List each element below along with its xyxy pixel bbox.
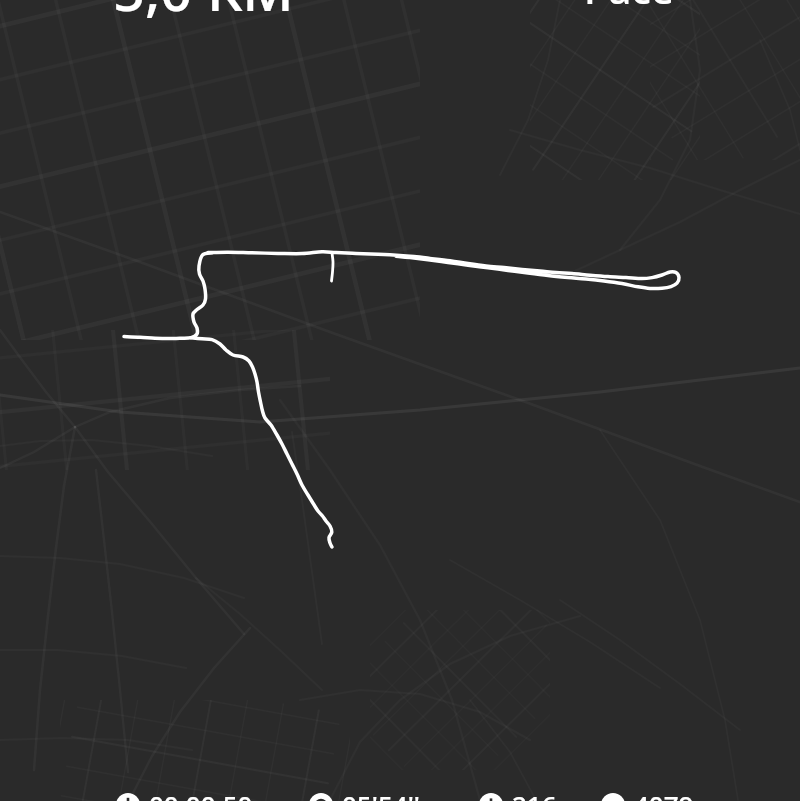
button[interactable]: Calories (479, 787, 557, 801)
other: Duration (116, 793, 140, 801)
other: Average pace (309, 793, 333, 801)
button[interactable]: Average pace (309, 787, 420, 801)
staticText: Pace (584, 0, 674, 15)
staticText: 05'54'' (342, 787, 420, 801)
staticText: 4079 (634, 787, 694, 801)
other: Steps (601, 793, 625, 801)
staticText: 00:00:50 (149, 787, 253, 801)
button[interactable]: Steps (601, 787, 694, 801)
button[interactable]: Duration (116, 787, 253, 801)
staticText: 5,0 KM (113, 0, 294, 27)
staticText: 216 (512, 787, 557, 801)
other: Calories (479, 793, 503, 801)
